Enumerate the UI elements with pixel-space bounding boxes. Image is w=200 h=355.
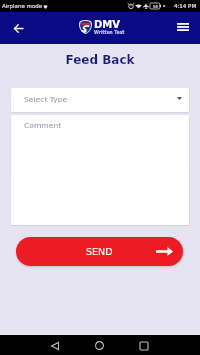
button[interactable]: Select Type (11, 88, 189, 112)
staticText: SEND (86, 246, 113, 257)
staticText: Select Type (24, 95, 68, 104)
button[interactable]: Back (45, 336, 64, 355)
button[interactable]: SEND (16, 237, 183, 266)
button[interactable]: Back (10, 20, 26, 36)
staticText: Airplane mode (2, 3, 43, 9)
button[interactable]: Comment (11, 115, 189, 225)
staticText: Comment (24, 121, 62, 130)
button[interactable]: Recents (134, 336, 153, 355)
staticText: 56 (153, 4, 159, 9)
staticText: DMV (94, 19, 120, 31)
button[interactable]: Home (90, 336, 109, 355)
staticText: Feed Back (0, 53, 200, 67)
button[interactable]: Menu (174, 18, 191, 35)
staticText: 4:14 PM (174, 3, 197, 9)
staticText: Written Test (94, 30, 125, 35)
